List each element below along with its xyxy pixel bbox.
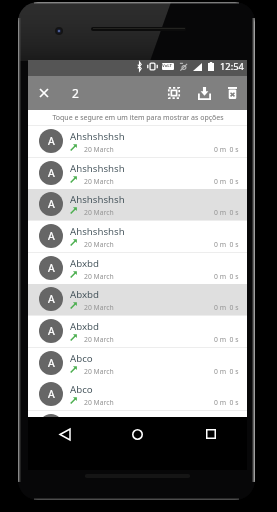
- staticText: A: [48, 229, 55, 243]
- staticText: 20 March: [84, 398, 114, 407]
- button[interactable]: A: [28, 158, 247, 190]
- staticText: 0 m 0 s: [214, 177, 239, 186]
- staticText: VoLTE: [162, 63, 174, 70]
- button[interactable]: A: [28, 348, 247, 380]
- button[interactable]: Recents: [174, 417, 247, 451]
- staticText: 0 m 0 s: [214, 398, 239, 407]
- button[interactable]: A: [28, 411, 247, 443]
- button[interactable]: A: [28, 253, 247, 285]
- staticText: Abco: [70, 383, 93, 396]
- staticText: 20 March: [84, 240, 114, 249]
- button[interactable]: A: [28, 221, 247, 253]
- staticText: 20 March: [84, 208, 114, 217]
- staticText: Abxbd: [70, 320, 99, 333]
- staticText: Abco: [70, 415, 93, 428]
- staticText: 0 m 0 s: [214, 303, 239, 312]
- staticText: 0 m 0 s: [214, 208, 239, 217]
- button[interactable]: A: [28, 189, 247, 221]
- staticText: 0 m 0 s: [214, 240, 239, 249]
- button[interactable]: Select all: [159, 76, 189, 110]
- staticText: Ahshshshsh: [70, 130, 125, 143]
- staticText: 12:54: [220, 60, 244, 73]
- staticText: 20 March: [84, 367, 114, 376]
- staticText: A: [48, 387, 55, 401]
- staticText: A: [48, 197, 55, 211]
- staticText: Ahshshshsh: [70, 193, 125, 206]
- staticText: Ahshshshsh: [70, 225, 125, 238]
- staticText: 20 March: [84, 303, 114, 312]
- button[interactable]: Download: [189, 76, 219, 110]
- staticText: 20 March: [84, 272, 114, 281]
- staticText: 0 m 0 s: [214, 272, 239, 281]
- staticText: 20 March: [84, 177, 114, 186]
- staticText: Abco: [70, 352, 93, 365]
- button[interactable]: Close: [30, 76, 58, 110]
- staticText: Abxbd: [70, 288, 99, 301]
- button[interactable]: Back: [28, 417, 101, 451]
- staticText: 0 m 0 s: [214, 145, 239, 154]
- staticText: 0 m 0 s: [214, 335, 239, 344]
- staticText: 0 m 0 s: [214, 367, 239, 376]
- staticText: 20 March: [84, 145, 114, 154]
- staticText: 2: [72, 85, 79, 101]
- button[interactable]: A: [28, 126, 247, 158]
- staticText: Abxbd: [70, 257, 99, 270]
- button[interactable]: Home: [101, 417, 174, 451]
- staticText: A: [48, 261, 55, 275]
- button[interactable]: A: [28, 284, 247, 316]
- staticText: A: [48, 324, 55, 338]
- button[interactable]: A: [28, 316, 247, 348]
- button[interactable]: Delete: [217, 76, 247, 110]
- staticText: Ahshshshsh: [70, 162, 125, 175]
- staticText: A: [48, 166, 55, 180]
- staticText: A: [48, 292, 55, 306]
- staticText: 20 March: [84, 335, 114, 344]
- staticText: A: [48, 356, 55, 370]
- button[interactable]: A: [28, 379, 247, 411]
- staticText: A: [48, 134, 55, 148]
- staticText: 0 m 0 s: [214, 430, 239, 439]
- staticText: Toque e segure em um item para mostrar a…: [52, 113, 224, 123]
